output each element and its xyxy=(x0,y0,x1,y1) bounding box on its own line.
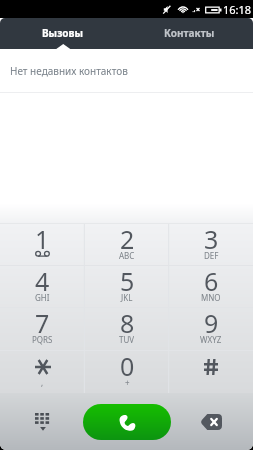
staticText: 9 xyxy=(204,306,219,340)
button[interactable]: Backspace xyxy=(169,393,253,450)
staticText: WXYZ xyxy=(200,334,222,345)
staticText: + xyxy=(125,377,130,388)
staticText: 16:18 xyxy=(223,2,252,17)
staticText: ABC xyxy=(119,250,135,261)
button[interactable]: Call xyxy=(83,404,171,440)
button[interactable]: 8 xyxy=(85,308,169,350)
button[interactable]: Контакты xyxy=(126,18,253,49)
button[interactable]: Show dialpad xyxy=(0,393,85,450)
staticText: TUV xyxy=(119,334,135,345)
staticText: , xyxy=(41,377,44,388)
staticText: 6 xyxy=(204,264,219,298)
staticText: 7 xyxy=(35,306,50,340)
staticText: 1 xyxy=(35,222,50,256)
button[interactable]: 1 xyxy=(0,224,85,265)
button[interactable]: 4 xyxy=(0,266,85,307)
staticText: 0 xyxy=(120,349,135,383)
button[interactable]: 3 xyxy=(169,224,253,265)
button[interactable]: 2 xyxy=(85,224,169,265)
button[interactable]: , xyxy=(0,351,85,393)
staticText: 3 xyxy=(204,222,219,256)
button[interactable]: 5 xyxy=(85,266,169,307)
staticText: PQRS xyxy=(32,334,53,345)
staticText: Вызовы xyxy=(42,26,84,40)
staticText: 4 xyxy=(35,264,50,298)
button[interactable]: 9 xyxy=(169,308,253,350)
staticText: 2 xyxy=(120,222,135,256)
button[interactable]: Вызовы xyxy=(0,18,126,49)
staticText: JKL xyxy=(121,292,133,303)
staticText: 5 xyxy=(120,264,135,298)
button[interactable]: 7 xyxy=(0,308,85,350)
button[interactable]: 6 xyxy=(169,266,253,307)
staticText: MNO xyxy=(201,292,221,303)
staticText: Контакты xyxy=(164,26,215,40)
staticText: DEF xyxy=(204,250,219,261)
button[interactable]: 0 xyxy=(85,351,169,393)
staticText: Нет недавних контактов xyxy=(10,64,128,78)
button[interactable] xyxy=(169,351,253,393)
staticText: 8 xyxy=(120,306,135,340)
staticText: GHI xyxy=(35,292,50,303)
